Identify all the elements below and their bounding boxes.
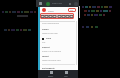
button[interactable]: Action 2 xyxy=(49,15,52,18)
button[interactable]: Action 7 xyxy=(70,15,73,18)
staticText: Inbound call from xyxy=(42,32,58,35)
staticText: Type xyxy=(46,37,51,40)
staticText: Inbox/Customer serv xyxy=(42,59,61,62)
staticText: Phone Call to getcom xyxy=(42,50,61,53)
staticText: Target xyxy=(42,55,49,58)
button[interactable]: Action 5 xyxy=(62,15,65,18)
button[interactable]: Chat xyxy=(64,71,68,77)
button[interactable]: Action 6 xyxy=(66,15,69,18)
staticText: Case Information xyxy=(42,22,60,25)
staticText: Calm xyxy=(48,9,54,12)
button[interactable]: More options xyxy=(74,2,78,6)
staticText: Pixel card xyxy=(52,2,62,5)
button[interactable]: Join call xyxy=(68,8,76,12)
button[interactable]: Phone xyxy=(48,71,54,77)
staticText: Call xyxy=(42,41,46,44)
staticText: Join xyxy=(70,9,74,11)
button[interactable]: Action 4 xyxy=(58,15,61,18)
button[interactable]: Device xyxy=(39,2,42,5)
staticText: Phone xyxy=(48,75,54,77)
staticText: Origin xyxy=(42,28,49,31)
staticText: Subject xyxy=(42,46,50,49)
staticText: Participants xyxy=(42,67,55,70)
staticText: Chat xyxy=(64,75,68,77)
staticText: Anna Smith xyxy=(49,72,60,75)
button[interactable]: Action 0 xyxy=(41,15,44,18)
button[interactable]: Action 1 xyxy=(45,15,48,18)
button[interactable]: Action 3 xyxy=(53,15,56,18)
button[interactable]: Run xyxy=(46,2,50,6)
